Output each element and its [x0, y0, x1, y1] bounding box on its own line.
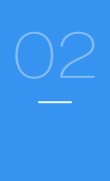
button[interactable]: Page 2, continue: [0, 0, 110, 181]
staticText: 02: [16, 14, 94, 97]
